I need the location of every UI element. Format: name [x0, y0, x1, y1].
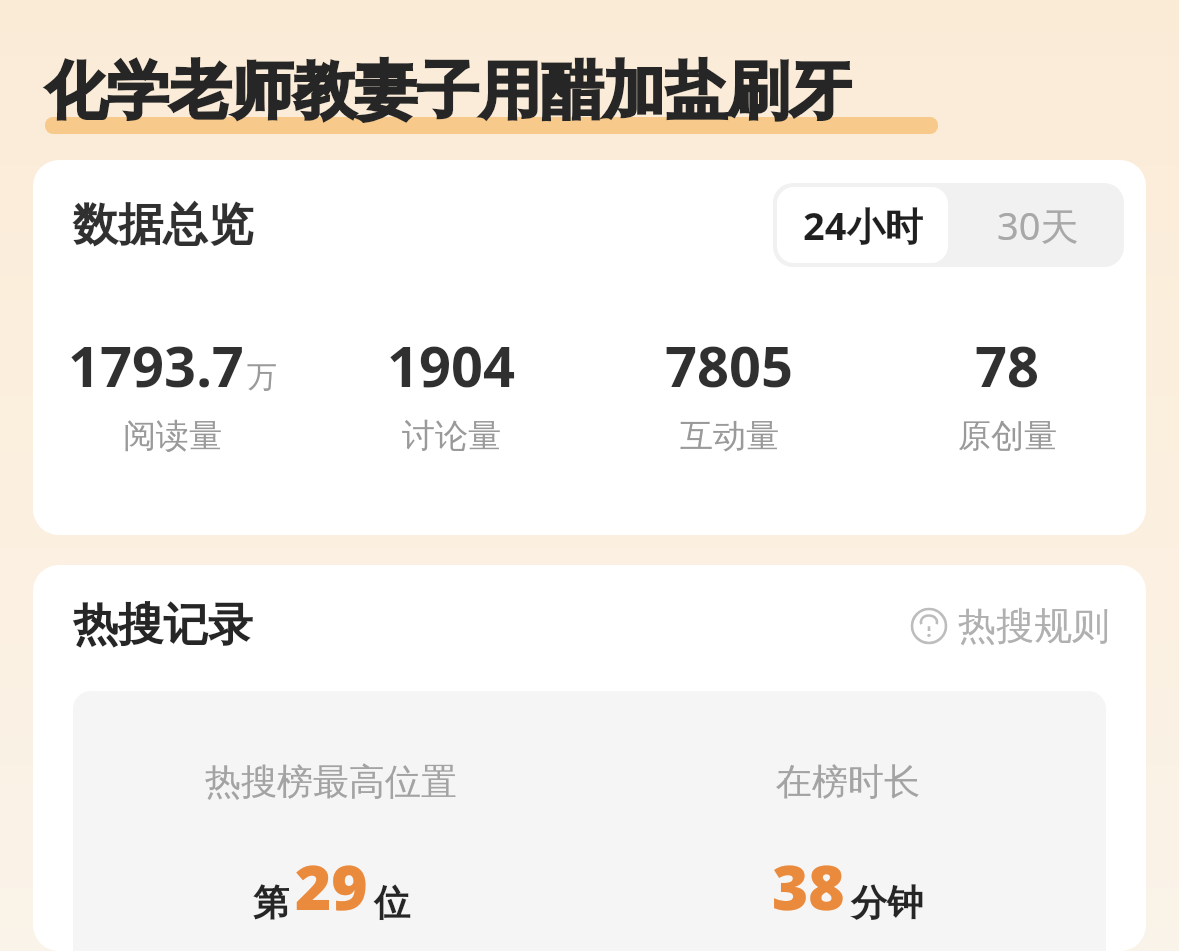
button[interactable]: 78 — [868, 327, 1146, 457]
staticText: 热搜规则 — [958, 602, 1110, 650]
button[interactable]: 1904 — [312, 327, 590, 457]
staticText: 热搜榜最高位置 — [205, 759, 457, 804]
staticText: 24小时 — [803, 199, 923, 251]
staticText: 第 — [253, 880, 289, 925]
staticText: 1793.7 — [68, 327, 244, 403]
staticText: 78 — [975, 327, 1040, 403]
button[interactable]: 热搜榜最高位置 — [73, 759, 589, 928]
staticText: 化学老师教妻子用醋加盐刷牙 — [45, 52, 851, 130]
staticText: 分钟 — [851, 880, 923, 925]
staticText: 29 — [295, 844, 368, 928]
button[interactable]: 在榜时长 — [589, 759, 1106, 928]
staticText: 热搜记录 — [73, 597, 253, 654]
staticText: 位 — [374, 880, 410, 925]
staticText: 万 — [247, 358, 277, 396]
staticText: 1904 — [387, 327, 516, 403]
button[interactable]: 24小时 — [777, 187, 948, 263]
staticText: 数据总览 — [73, 197, 253, 254]
staticText: 7805 — [665, 327, 794, 403]
button[interactable]: 1793.7 — [33, 327, 312, 457]
button[interactable]: 30天 — [952, 183, 1124, 267]
staticText: 互动量 — [680, 415, 779, 457]
staticText: 在榜时长 — [776, 759, 920, 804]
staticText: 讨论量 — [402, 415, 501, 457]
staticText: 原创量 — [958, 415, 1057, 457]
staticText: 30天 — [997, 199, 1079, 251]
staticText: 38 — [772, 844, 845, 928]
button[interactable]: 热搜规则 — [906, 598, 1114, 654]
staticText: 阅读量 — [123, 415, 222, 457]
button[interactable]: 7805 — [590, 327, 868, 457]
